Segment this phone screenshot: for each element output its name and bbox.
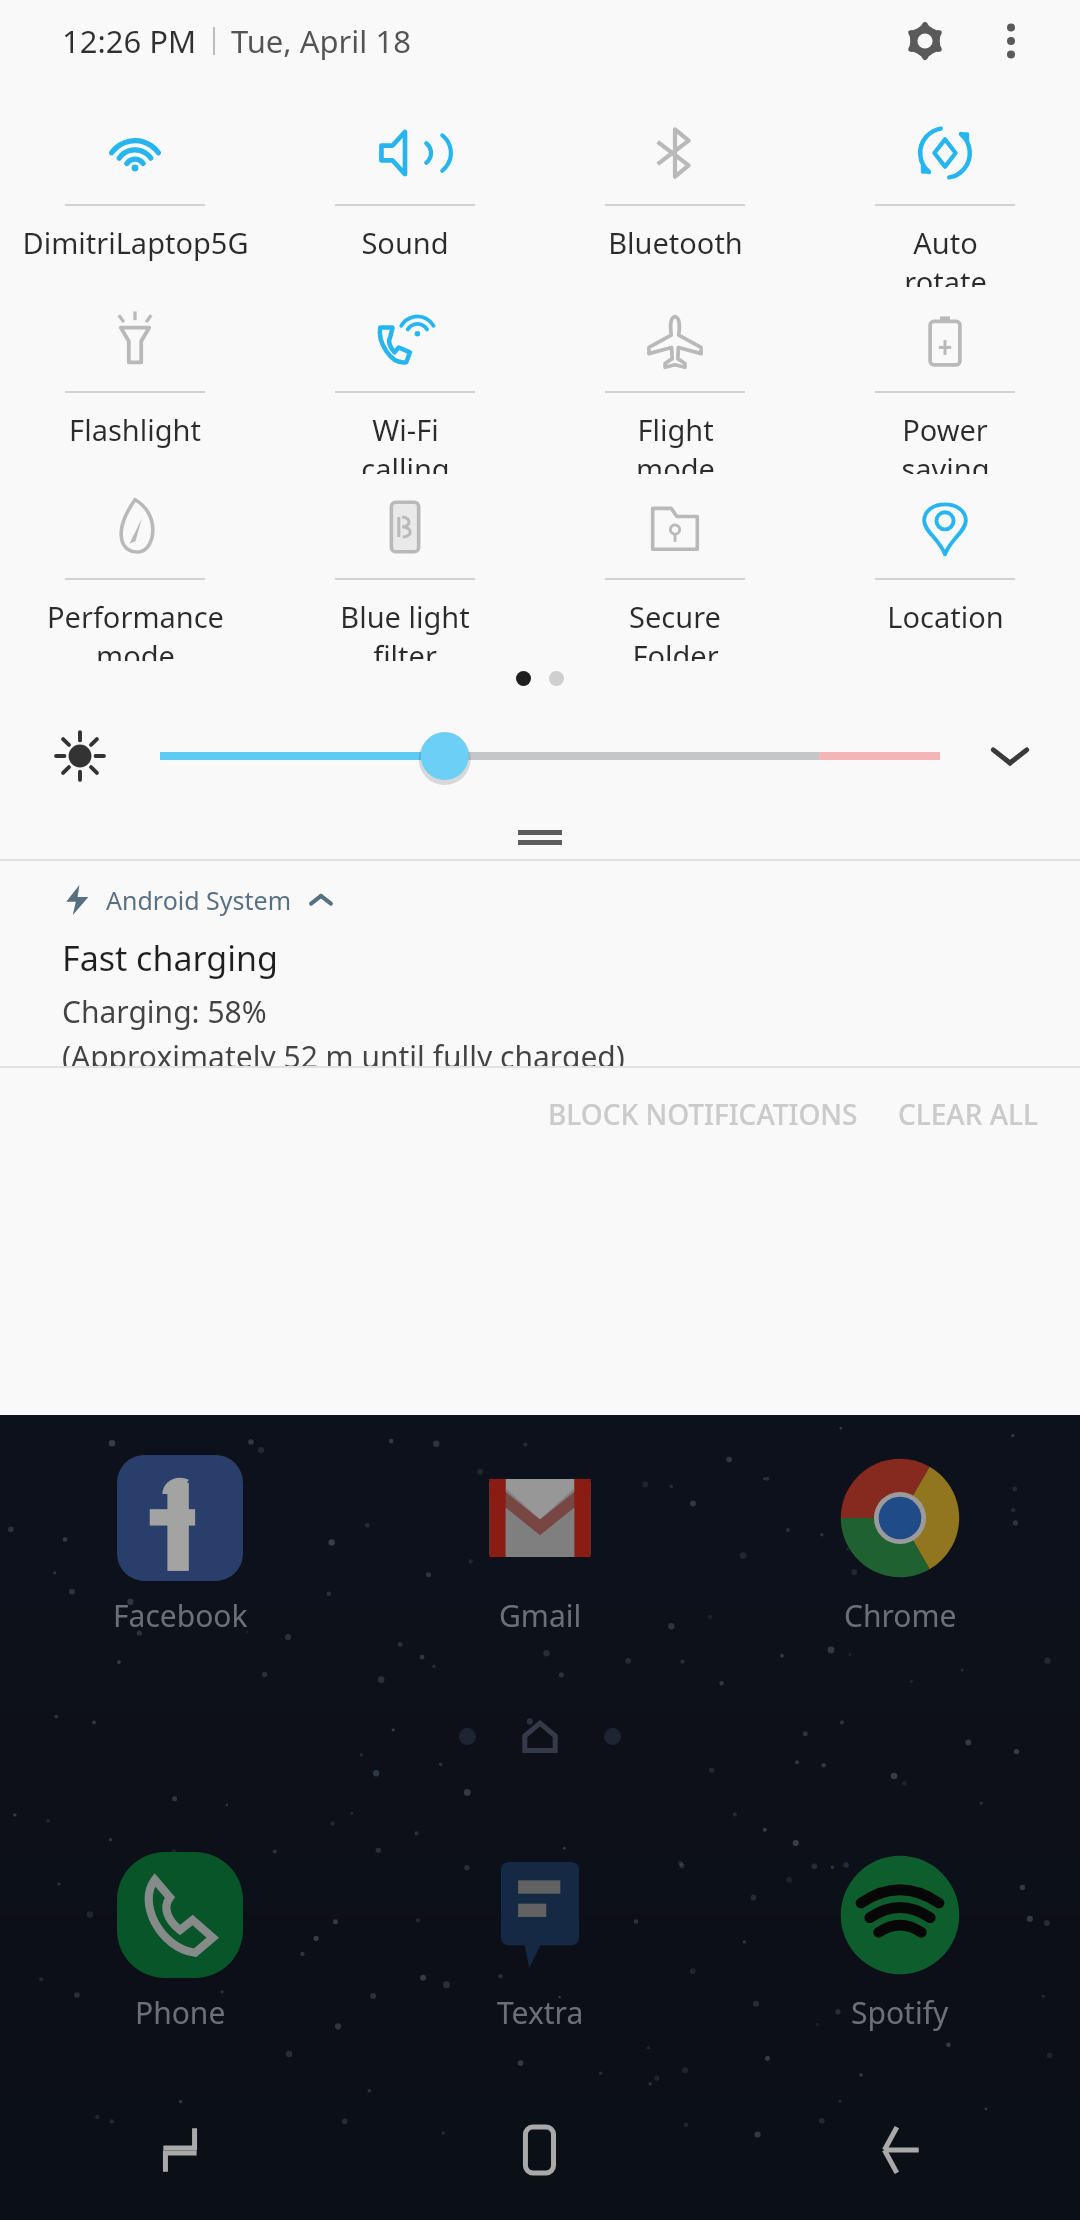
button[interactable]: Auto brightness	[0, 708, 160, 804]
button[interactable]: Back	[720, 2080, 1080, 2220]
staticText: Secure	[629, 597, 721, 636]
staticText: (Approximately 52 m until fully charged)	[62, 1036, 625, 1066]
staticText: Chrome	[844, 1595, 957, 1636]
staticText: Textra	[497, 1992, 584, 2033]
staticText: Auto	[913, 223, 978, 262]
button[interactable]	[160, 708, 940, 804]
button[interactable]: Android System	[0, 861, 1080, 1066]
button[interactable]: Home	[360, 2080, 720, 2220]
staticText: saving	[901, 449, 990, 474]
button[interactable]: BLOCK NOTIFICATIONS	[528, 1077, 878, 1151]
button[interactable]: Bluetooth	[540, 100, 810, 287]
staticText: Flight	[637, 410, 714, 449]
button[interactable]: Phone	[0, 1852, 360, 2033]
button[interactable]: Chrome	[720, 1455, 1080, 1636]
staticText: Facebook	[113, 1595, 248, 1636]
staticText: CLEAR ALL	[898, 1095, 1038, 1133]
staticText: Fast charging	[62, 935, 278, 981]
staticText: calling	[361, 449, 450, 474]
button[interactable]: Secure Folder	[540, 474, 810, 661]
button[interactable]: Facebook	[0, 1455, 360, 1636]
button[interactable]: Textra	[360, 1852, 720, 2033]
button[interactable]: Recents	[0, 2080, 360, 2220]
staticText: mode	[636, 449, 715, 474]
button[interactable]: Auto rotate	[810, 100, 1080, 287]
button[interactable]: Flight mode	[540, 287, 810, 474]
button[interactable]: Collapse panel	[0, 830, 1080, 845]
staticText: Performance	[47, 597, 224, 636]
staticText: Android System	[106, 883, 292, 917]
button[interactable]: Sound	[270, 100, 540, 287]
staticText: Sound	[361, 223, 449, 262]
staticText: rotate	[904, 262, 987, 287]
button[interactable]: Gmail	[360, 1455, 720, 1636]
button[interactable]: Flashlight	[0, 287, 270, 474]
staticText: BLOCK NOTIFICATIONS	[548, 1095, 858, 1133]
staticText: Flashlight	[69, 410, 201, 449]
button[interactable]: Location	[810, 474, 1080, 661]
staticText: Power	[902, 410, 988, 449]
staticText: Phone	[135, 1992, 226, 2033]
button[interactable]: CLEAR ALL	[878, 1077, 1080, 1151]
button[interactable]: DimitriLaptop5G	[0, 100, 270, 287]
staticText: Tue, April 18	[231, 20, 411, 62]
button[interactable]: Expand brightness settings	[940, 708, 1080, 804]
button[interactable]: More options	[976, 6, 1046, 76]
staticText: filter	[373, 636, 437, 661]
staticText: DimitriLaptop5G	[22, 223, 249, 262]
staticText: 12:26 PM	[62, 20, 197, 62]
button[interactable]: Spotify	[720, 1852, 1080, 2033]
staticText: Blue light	[340, 597, 470, 636]
staticText: Wi-Fi	[372, 410, 439, 449]
staticText: Spotify	[851, 1992, 949, 2033]
staticText: Location	[887, 597, 1004, 636]
button[interactable]: Blue light filter	[270, 474, 540, 661]
staticText: Charging: 58%	[62, 991, 267, 1032]
staticText: Gmail	[499, 1595, 582, 1636]
staticText: mode	[96, 636, 175, 661]
button[interactable]: Power saving	[810, 287, 1080, 474]
button[interactable]: Wi-Fi calling	[270, 287, 540, 474]
staticText: Folder	[632, 636, 719, 661]
staticText: Bluetooth	[608, 223, 743, 262]
button[interactable]: Performance mode	[0, 474, 270, 661]
button[interactable]: Settings	[888, 4, 962, 78]
